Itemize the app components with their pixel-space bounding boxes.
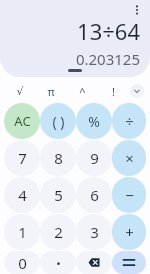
staticText: ^ xyxy=(79,84,86,99)
staticText: ÷ xyxy=(125,111,134,131)
button[interactable]: 1 xyxy=(4,214,40,250)
button[interactable]: − xyxy=(112,177,146,213)
button[interactable]: ^ xyxy=(68,82,96,100)
button[interactable]: × xyxy=(112,140,146,176)
staticText: ! xyxy=(112,84,115,99)
staticText: 0.203125 xyxy=(75,49,140,69)
staticText: 7 xyxy=(18,148,27,168)
button[interactable]: Equals xyxy=(112,251,146,274)
staticText: ( ) xyxy=(52,112,65,131)
button[interactable]: ÷ xyxy=(112,103,146,139)
button[interactable]: · xyxy=(40,251,76,274)
button[interactable]: √ xyxy=(6,82,34,100)
button[interactable]: 2 xyxy=(40,214,76,250)
staticText: √ xyxy=(16,85,24,98)
button[interactable]: More options xyxy=(128,1,146,19)
staticText: 6 xyxy=(90,185,99,205)
button[interactable]: 9 xyxy=(76,140,112,176)
button[interactable]: 8 xyxy=(40,140,76,176)
button[interactable]: AC xyxy=(4,103,40,139)
staticText: 13÷64 xyxy=(77,16,140,46)
button[interactable]: 4 xyxy=(4,177,40,213)
button[interactable]: π xyxy=(37,82,65,100)
button[interactable]: ! xyxy=(99,82,127,100)
staticText: + xyxy=(125,222,134,242)
staticText: 8 xyxy=(54,148,63,168)
staticText: − xyxy=(125,185,134,205)
staticText: 1 xyxy=(18,222,27,242)
staticText: π xyxy=(47,84,55,99)
button[interactable]: + xyxy=(112,214,146,250)
button[interactable]: Backspace xyxy=(76,251,112,274)
staticText: × xyxy=(125,148,134,168)
staticText: 2 xyxy=(54,222,63,242)
button[interactable]: ( ) xyxy=(40,103,76,139)
button[interactable]: % xyxy=(76,103,112,139)
staticText: 4 xyxy=(18,185,27,205)
button[interactable]: 6 xyxy=(76,177,112,213)
button[interactable]: 3 xyxy=(76,214,112,250)
button[interactable]: Expand functions xyxy=(130,84,144,98)
staticText: 5 xyxy=(54,185,63,205)
button[interactable]: 7 xyxy=(4,140,40,176)
staticText: 0 xyxy=(18,253,27,273)
staticText: AC xyxy=(14,112,31,130)
button[interactable]: 5 xyxy=(40,177,76,213)
staticText: 9 xyxy=(90,148,99,168)
button[interactable]: 0 xyxy=(4,251,40,274)
staticText: % xyxy=(88,112,100,131)
staticText: · xyxy=(56,252,61,274)
staticText: 3 xyxy=(90,222,99,242)
